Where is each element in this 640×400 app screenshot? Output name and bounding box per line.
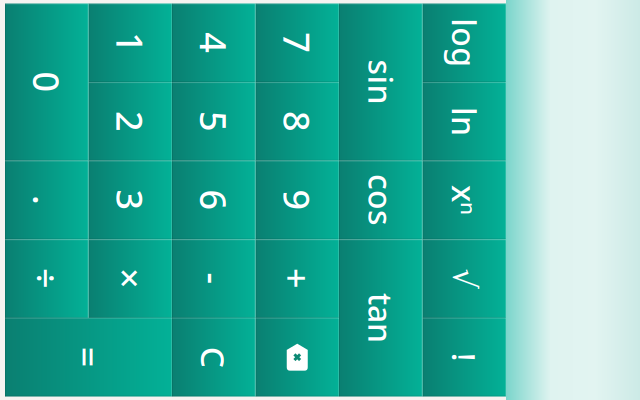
button[interactable]: 7	[123, 181, 202, 264]
staticText: +	[388, 199, 409, 247]
button[interactable]: ln	[202, 14, 281, 97]
button[interactable]: C	[438, 264, 516, 348]
staticText: cos	[294, 118, 346, 160]
button[interactable]: 6	[281, 264, 359, 348]
button[interactable]: √	[359, 14, 438, 97]
staticText: √	[389, 38, 409, 74]
staticText: 7	[152, 199, 173, 247]
staticText: 3	[309, 366, 330, 400]
button[interactable]: tan	[359, 97, 516, 181]
button[interactable]: xⁿ	[281, 14, 359, 97]
staticText: C	[467, 284, 488, 328]
staticText: ×	[388, 366, 409, 400]
button[interactable]: ×	[359, 348, 438, 400]
staticText: 8	[231, 199, 252, 247]
staticText: tan	[413, 118, 463, 160]
button[interactable]: +	[359, 181, 438, 264]
staticText: log	[138, 34, 187, 77]
button[interactable]: 1	[123, 348, 202, 400]
button[interactable]: Delete	[438, 181, 516, 264]
button[interactable]: 5	[202, 264, 281, 348]
button[interactable]: sin	[123, 97, 281, 181]
staticText: 2	[231, 366, 252, 400]
staticText: 5	[231, 282, 252, 330]
button[interactable]: !	[438, 14, 516, 97]
button[interactable]: 8	[202, 181, 281, 264]
button[interactable]: 2	[202, 348, 281, 400]
staticText: 1	[152, 366, 173, 400]
button[interactable]: -	[359, 264, 438, 348]
staticText: 9	[309, 199, 330, 247]
button[interactable]: 3	[281, 348, 359, 400]
button[interactable]: 9	[281, 181, 359, 264]
staticText: 4	[152, 282, 173, 330]
button[interactable]: log	[123, 14, 202, 97]
button[interactable]: 4	[123, 264, 202, 348]
button[interactable]: cos	[281, 97, 359, 181]
button[interactable]: =	[438, 348, 516, 400]
staticText: ln	[227, 34, 256, 77]
staticText: xⁿ	[305, 34, 335, 77]
staticText: sin	[180, 118, 225, 160]
staticText: 6	[309, 282, 330, 330]
